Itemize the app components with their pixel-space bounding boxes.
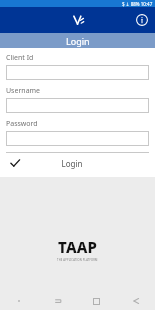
staticText: $ ↓ 88% 10:47	[122, 1, 153, 7]
button[interactable]: Information	[134, 12, 150, 28]
button[interactable]: Menu	[0, 292, 38, 310]
staticText: Password	[6, 119, 38, 129]
button[interactable]: Login	[6, 153, 149, 173]
staticText: THE APPLICATION PLATFORM	[57, 258, 98, 262]
button[interactable]	[6, 65, 149, 80]
button[interactable]	[6, 98, 149, 113]
staticText: Login	[66, 35, 90, 47]
staticText: Username	[6, 86, 41, 96]
button[interactable]: Recent apps	[77, 292, 116, 310]
button[interactable]	[6, 131, 149, 146]
staticText: Client Id	[6, 53, 34, 63]
button[interactable]: Hide keyboard	[38, 292, 77, 310]
staticText: Login	[21, 158, 123, 169]
staticText: TAAP	[58, 237, 98, 257]
button[interactable]: Back	[116, 292, 155, 310]
